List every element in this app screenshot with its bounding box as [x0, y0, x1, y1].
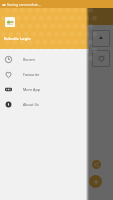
- staticText: More App: [23, 87, 40, 92]
- staticText: Favourite: [23, 72, 40, 77]
- staticText: Saving screenshot…: [7, 2, 41, 7]
- staticText: About Us: [23, 102, 39, 107]
- staticText: Eclectic Logic: [4, 36, 31, 42]
- button[interactable]: About Us: [0, 97, 86, 112]
- button[interactable]: [92, 30, 110, 47]
- button[interactable]: Share: [92, 160, 101, 169]
- button[interactable]: More App: [0, 82, 86, 97]
- staticText: Recent: [23, 57, 35, 62]
- button[interactable]: Favourite: [0, 67, 86, 82]
- other: App logo: [5, 17, 15, 27]
- button[interactable]: Favourite: [98, 55, 105, 62]
- button[interactable]: Recent: [0, 52, 86, 67]
- button[interactable]: Favourite: [92, 50, 110, 67]
- button[interactable]: Add: [89, 175, 102, 188]
